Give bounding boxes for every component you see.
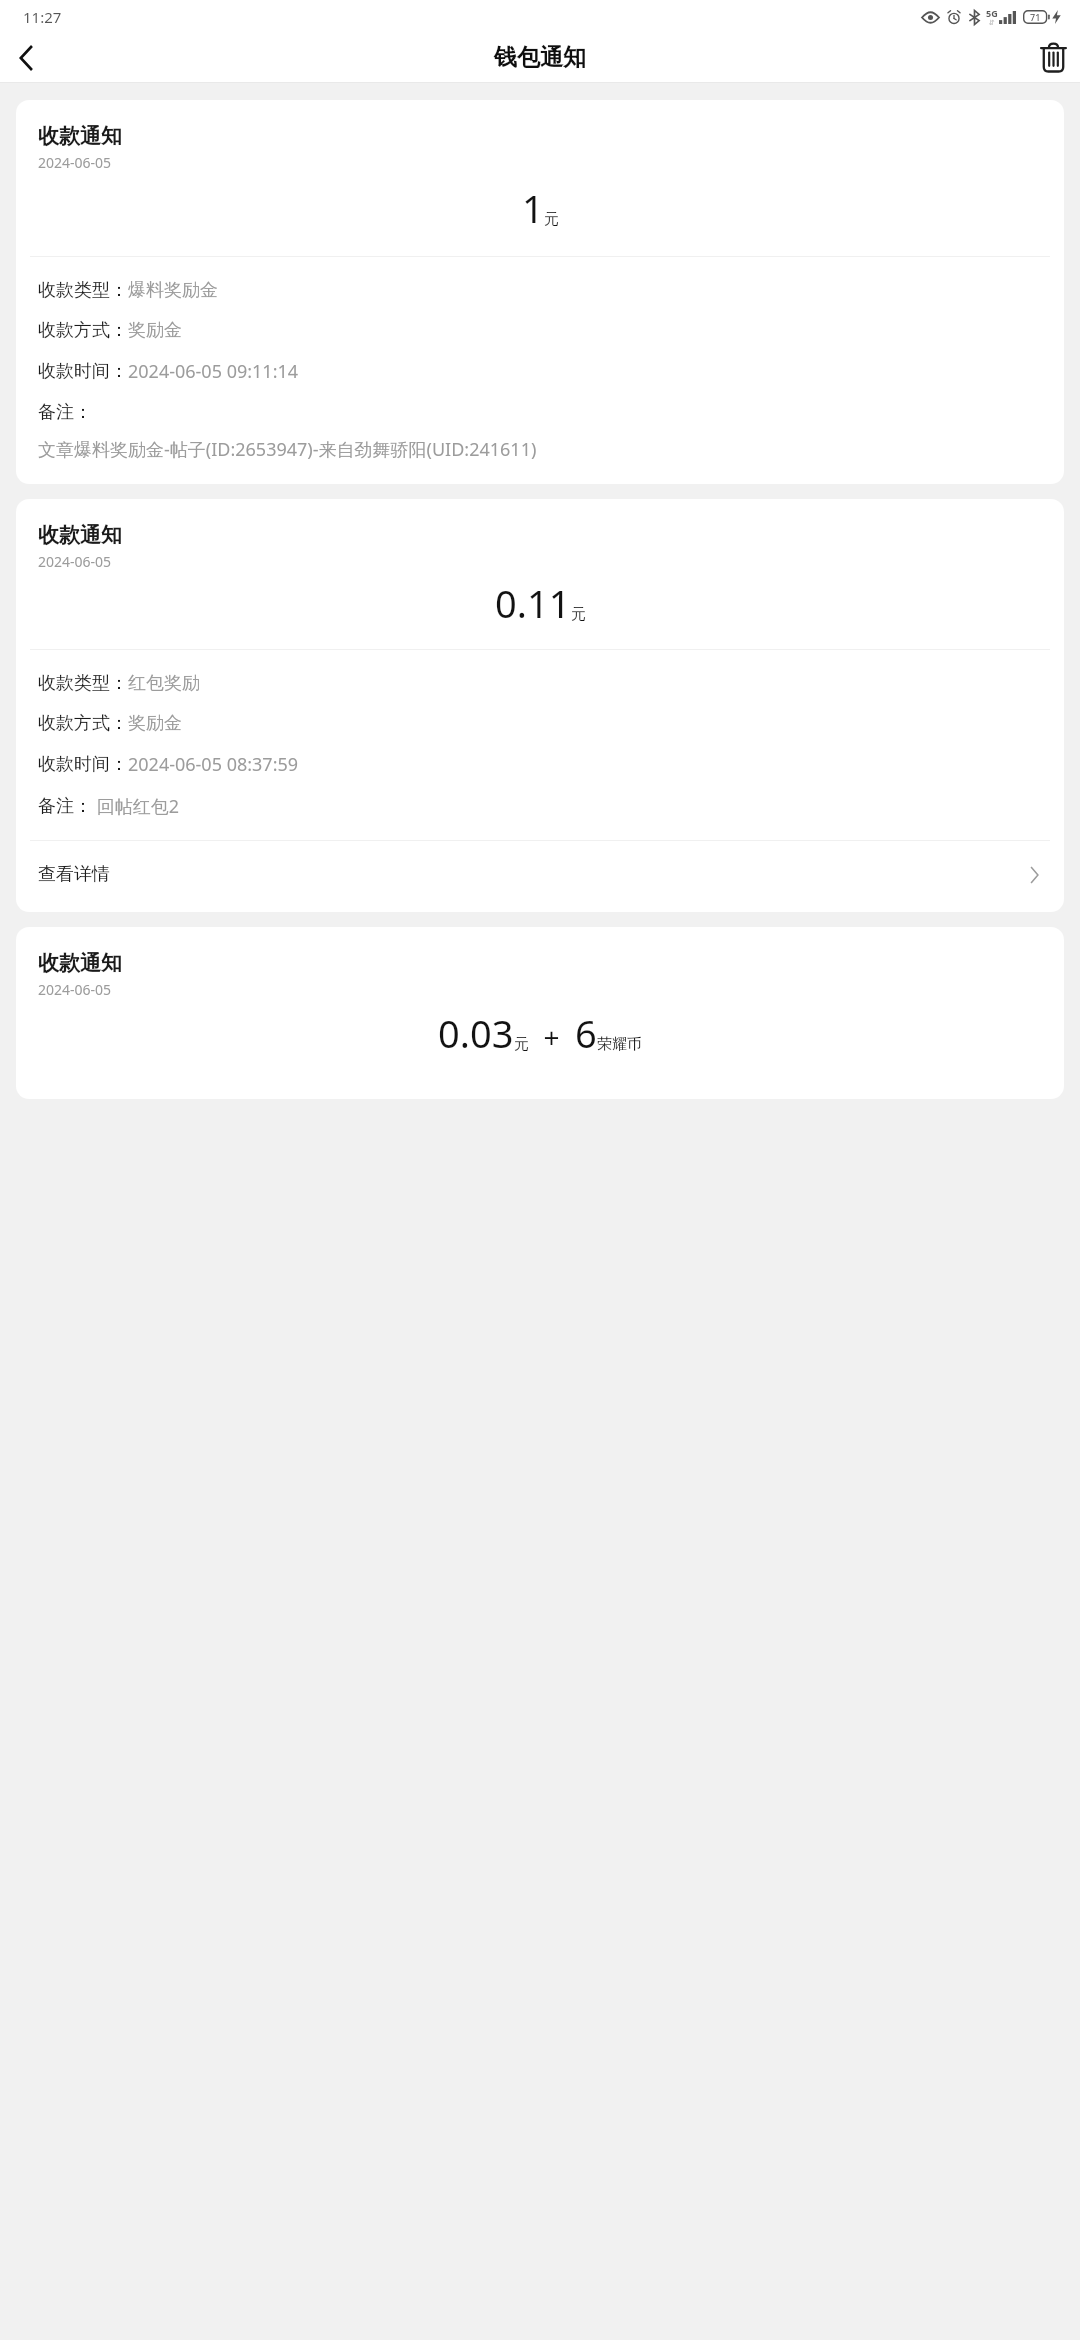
- staticText: +: [529, 1018, 575, 1056]
- staticText: 奖励金: [128, 319, 182, 342]
- staticText: 查看详情: [38, 863, 110, 886]
- staticText: 收款通知: [38, 123, 122, 149]
- staticText: 5G: [986, 7, 998, 19]
- button[interactable]: 查看详情: [16, 841, 1064, 912]
- staticText: 收款时间：: [38, 360, 128, 383]
- button[interactable]: 收款通知: [16, 927, 1064, 1099]
- staticText: 2024-06-05 08:37:59: [128, 752, 299, 777]
- staticText: 11:27: [23, 7, 62, 27]
- staticText: 6: [575, 1007, 597, 1059]
- staticText: 收款方式：: [38, 712, 128, 735]
- button[interactable]: 收款通知: [16, 100, 1064, 484]
- staticText: 回帖红包2: [92, 794, 179, 819]
- staticText: 2024-06-05: [38, 980, 112, 999]
- staticText: 红包奖励: [128, 672, 200, 695]
- staticText: 0.11: [495, 577, 571, 629]
- staticText: 荣耀币: [597, 1035, 642, 1054]
- staticText: 0.03: [438, 1007, 514, 1059]
- staticText: 收款通知: [38, 950, 122, 976]
- staticText: 奖励金: [128, 712, 182, 735]
- staticText: 备注：: [38, 401, 92, 424]
- staticText: 文章爆料奖励金-帖子(ID:2653947)-来自劲舞骄阳(UID:241611…: [38, 437, 537, 462]
- staticText: 2024-06-05: [38, 552, 112, 571]
- staticText: 71: [1030, 11, 1041, 23]
- staticText: 备注：: [38, 795, 92, 818]
- button[interactable]: Back: [0, 33, 52, 82]
- staticText: 收款类型：: [38, 672, 128, 695]
- staticText: 1: [522, 182, 544, 234]
- staticText: ⇵: [989, 19, 995, 27]
- staticText: 爆料奖励金: [128, 279, 218, 302]
- staticText: 2024-06-05: [38, 153, 112, 172]
- staticText: 收款通知: [38, 522, 122, 548]
- staticText: 元: [571, 605, 586, 624]
- staticText: 2024-06-05 09:11:14: [128, 359, 299, 384]
- button[interactable]: Delete: [1026, 33, 1080, 82]
- staticText: 收款方式：: [38, 319, 128, 342]
- staticText: 收款类型：: [38, 279, 128, 302]
- staticText: 元: [514, 1035, 529, 1054]
- staticText: 收款时间：: [38, 753, 128, 776]
- staticText: 元: [544, 210, 559, 229]
- staticText: 钱包通知: [494, 43, 586, 72]
